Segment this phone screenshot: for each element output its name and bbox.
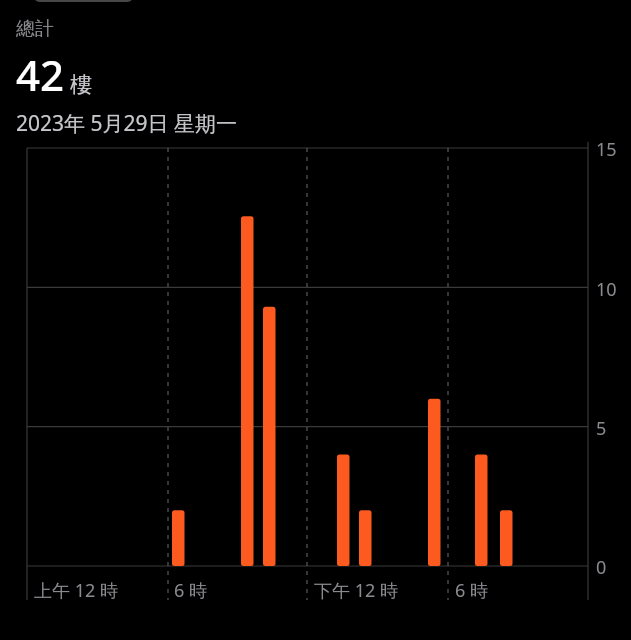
staticText: 42 — [16, 46, 65, 103]
staticText: 上午 12 時 — [34, 578, 118, 603]
staticText: 6 時 — [174, 578, 207, 603]
staticText: 總計 — [16, 17, 54, 41]
staticText: 樓 — [70, 71, 92, 99]
button[interactable]: Back — [33, 0, 134, 2]
staticText: 下午 12 時 — [314, 578, 398, 603]
button[interactable] — [0, 0, 631, 640]
staticText: 15 — [596, 137, 617, 162]
staticText: 0 — [596, 555, 607, 580]
staticText: 5 — [596, 416, 607, 441]
staticText: 2023年 5月29日 星期一 — [16, 109, 238, 138]
staticText: 6 時 — [455, 578, 488, 603]
staticText: 10 — [596, 277, 617, 302]
